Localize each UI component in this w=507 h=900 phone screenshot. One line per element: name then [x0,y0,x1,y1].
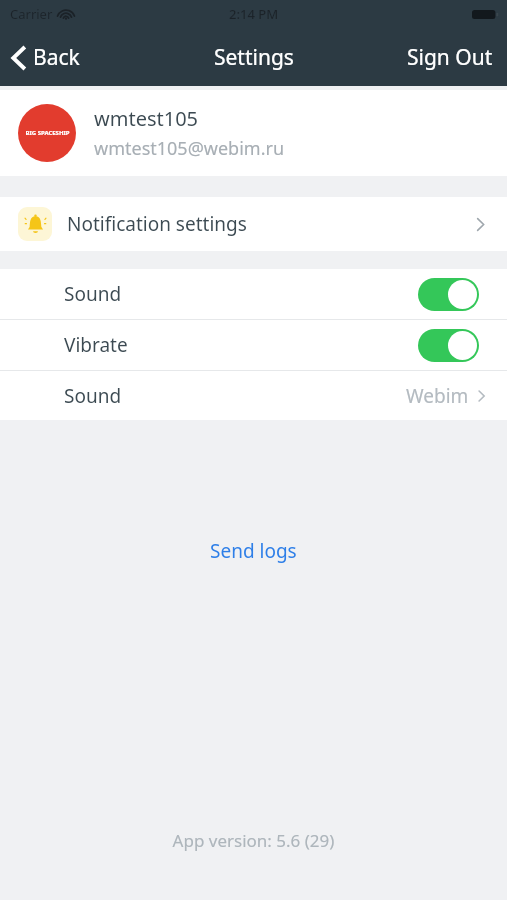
staticText: Sign Out [407,43,493,72]
button[interactable]: Vibrate [0,320,507,370]
staticText: Settings [214,43,294,72]
button[interactable]: Toggle on [418,278,479,311]
staticText: wmtest105@webim.ru [94,136,285,161]
staticText: wmtest105 [94,105,199,132]
staticText: Send logs [210,538,297,564]
staticText: Sound [64,383,122,409]
staticText: BIG SPACESHIP [25,129,70,137]
staticText: Carrier [10,5,53,23]
button[interactable]: Sign Out [393,35,507,80]
button[interactable]: Notification settings [0,197,507,251]
button[interactable]: Send logs [194,532,313,570]
button[interactable]: Sound [0,269,507,319]
staticText: App version: 5.6 (29) [0,829,507,852]
staticText: Vibrate [64,332,128,358]
staticText: Sound [64,281,122,307]
staticText: Back [33,43,80,72]
staticText: 2:14 PM [229,5,279,23]
button[interactable]: BIG SPACESHIP [0,90,507,176]
staticText: Webim [406,383,469,409]
staticText: Notification settings [67,211,247,237]
button[interactable]: Sound [0,371,507,420]
button[interactable]: Back [0,35,94,80]
button[interactable]: Toggle on [418,329,479,362]
